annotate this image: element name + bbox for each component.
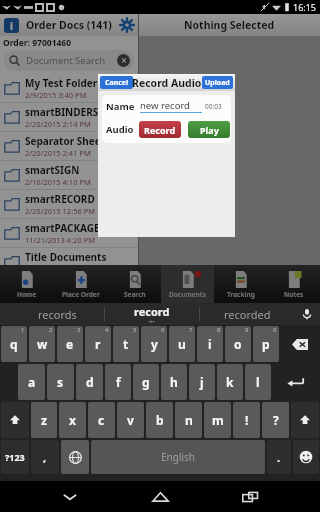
button[interactable]: r	[85, 326, 111, 362]
button[interactable]: Settings	[120, 18, 134, 32]
button[interactable]: Documents	[161, 265, 214, 303]
staticText: s	[57, 374, 64, 390]
button[interactable]: h	[161, 364, 187, 400]
button[interactable]: smartPACKAGE	[0, 219, 138, 247]
button[interactable]: Enter	[273, 364, 319, 400]
staticText: smartPACKAGE	[25, 221, 100, 235]
button[interactable]: ?	[262, 402, 289, 438]
button[interactable]: Shift	[291, 402, 319, 438]
button[interactable]: .	[267, 440, 291, 474]
staticText: 2/16/2015 4:10 PM	[25, 177, 91, 187]
button[interactable]: recorded	[200, 303, 294, 325]
staticText: Place Order	[62, 290, 100, 299]
staticText: w	[37, 336, 48, 352]
button[interactable]: d	[76, 364, 103, 400]
button[interactable]: u	[169, 326, 195, 362]
button[interactable]: English	[91, 440, 265, 474]
staticText: a	[28, 374, 36, 390]
staticText: d	[86, 374, 94, 390]
button[interactable]: Upload	[202, 76, 233, 89]
button[interactable]: Change language	[61, 440, 89, 474]
button[interactable]: smartSIGN	[0, 161, 138, 189]
button[interactable]: Notes	[267, 265, 320, 303]
button[interactable]: ,	[31, 440, 59, 474]
button[interactable]: !	[233, 402, 260, 438]
button[interactable]: Recent apps	[230, 481, 270, 512]
button[interactable]: z	[31, 402, 57, 438]
staticText: 2/20/2015 2:41 PM	[25, 148, 91, 158]
button[interactable]: record	[105, 303, 199, 325]
button[interactable]: m	[204, 402, 231, 438]
button[interactable]: v	[117, 402, 144, 438]
staticText: .	[277, 450, 281, 465]
button[interactable]: new record	[140, 99, 202, 113]
button[interactable]: j	[189, 364, 215, 400]
button[interactable]: Info	[4, 18, 19, 33]
button[interactable]: Clear search	[117, 54, 130, 67]
staticText: 7	[189, 326, 193, 334]
button[interactable]: y	[141, 326, 167, 362]
staticText: !	[245, 412, 249, 428]
staticText: 8	[217, 326, 221, 334]
button[interactable]: t	[113, 326, 139, 362]
button[interactable]: e	[57, 326, 83, 362]
button[interactable]: Cancel	[100, 76, 133, 89]
button[interactable]: s	[47, 364, 74, 400]
button[interactable]: Search	[108, 265, 161, 303]
button[interactable]: Emoji	[293, 440, 319, 474]
staticText: Document Search	[26, 54, 106, 67]
button[interactable]: a	[18, 364, 45, 400]
button[interactable]: Separator Sheets	[0, 132, 138, 160]
staticText: smartSIGN	[25, 163, 80, 177]
button[interactable]: Title Documents	[0, 248, 138, 276]
staticText: recorded	[224, 307, 271, 322]
button[interactable]: Hide keyboard	[50, 481, 90, 512]
button[interactable]: x	[59, 402, 86, 438]
staticText: My Test Folder	[25, 76, 98, 90]
button[interactable]: smartRECORD	[0, 190, 138, 218]
staticText: 3	[77, 326, 81, 334]
staticText: n	[185, 412, 193, 428]
button[interactable]: f	[105, 364, 131, 400]
button[interactable]: Voice input	[294, 303, 320, 325]
button[interactable]: Document Search	[4, 50, 134, 71]
button[interactable]: c	[88, 402, 115, 438]
staticText: p	[262, 336, 270, 352]
button[interactable]: k	[217, 364, 243, 400]
staticText: new record	[140, 99, 190, 112]
staticText: 16:15	[293, 1, 317, 13]
button[interactable]: Home	[140, 481, 180, 512]
button[interactable]: i	[197, 326, 223, 362]
staticText: Play	[200, 124, 219, 136]
button[interactable]: Record	[139, 121, 181, 138]
staticText: 6	[161, 326, 165, 334]
button[interactable]: Place Order	[54, 265, 108, 303]
button[interactable]: o	[225, 326, 251, 362]
button[interactable]: records	[10, 303, 104, 325]
button[interactable]: Shift	[1, 402, 29, 438]
button[interactable]: w	[29, 326, 55, 362]
staticText: Title Documents	[25, 250, 107, 264]
staticText: Upload	[205, 78, 230, 88]
staticText: Record Audio	[132, 76, 202, 90]
staticText: Record	[144, 124, 176, 136]
staticText: y	[151, 336, 158, 352]
button[interactable]: Play	[188, 121, 230, 138]
button[interactable]: b	[146, 402, 173, 438]
staticText: Audio	[106, 123, 134, 136]
button[interactable]: n	[175, 402, 202, 438]
staticText: o	[234, 336, 242, 352]
button[interactable]: l	[245, 364, 271, 400]
button[interactable]: My Test Folder	[0, 74, 138, 102]
button[interactable]: ?123	[1, 440, 29, 474]
button[interactable]: g	[133, 364, 159, 400]
staticText: c	[98, 412, 105, 428]
staticText: 2/9/2015 3:40 PM	[25, 90, 87, 100]
button[interactable]: smartBINDERS	[0, 103, 138, 131]
button[interactable]: Home	[0, 265, 54, 303]
button[interactable]: Tracking	[214, 265, 267, 303]
button[interactable]: q	[1, 326, 27, 362]
button[interactable]: p	[253, 326, 279, 362]
staticText: 2/20/2015 2:43 PM	[25, 264, 91, 274]
button[interactable]: Backspace	[281, 326, 319, 362]
